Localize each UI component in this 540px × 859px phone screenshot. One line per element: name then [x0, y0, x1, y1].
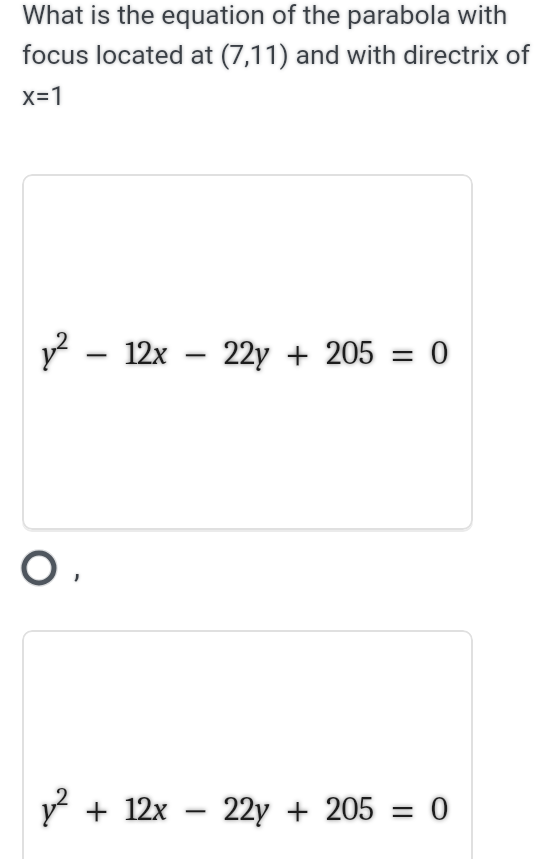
button[interactable]: y2 + 12x − 22y + 205 = 0 — [22, 630, 473, 859]
staticText: y2 + 12x − 22y + 205 = 0 — [42, 782, 448, 828]
button[interactable] — [21, 550, 57, 586]
staticText: What is the equation of the parabola wit… — [22, 0, 531, 112]
staticText: y2 − 12x − 22y + 205 = 0 — [42, 326, 448, 372]
staticText: , — [74, 548, 81, 584]
button[interactable]: y2 − 12x − 22y + 205 = 0 — [22, 174, 473, 530]
